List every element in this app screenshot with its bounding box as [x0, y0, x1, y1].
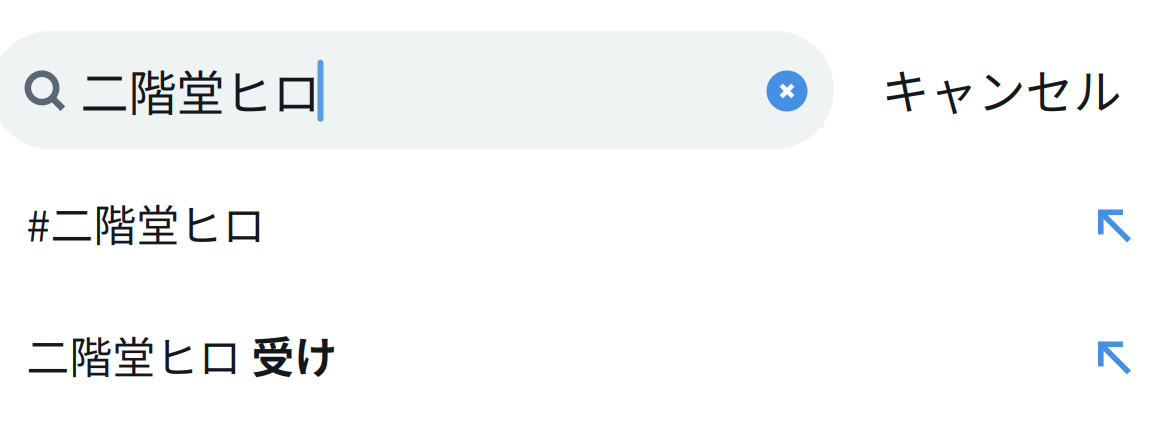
staticText: キャンセル	[881, 54, 1121, 123]
button[interactable]: キャンセル	[851, 29, 1151, 147]
staticText: 受け	[251, 324, 337, 386]
button[interactable]: 二階堂ヒロ	[0, 292, 1170, 420]
button[interactable]: Clear text	[750, 54, 824, 128]
staticText: #二階堂ヒロ	[26, 192, 265, 254]
staticText: 二階堂ヒロ	[80, 55, 320, 124]
button[interactable]: #二階堂ヒロ	[0, 160, 1170, 288]
staticText: 二階堂ヒロ	[26, 324, 251, 386]
